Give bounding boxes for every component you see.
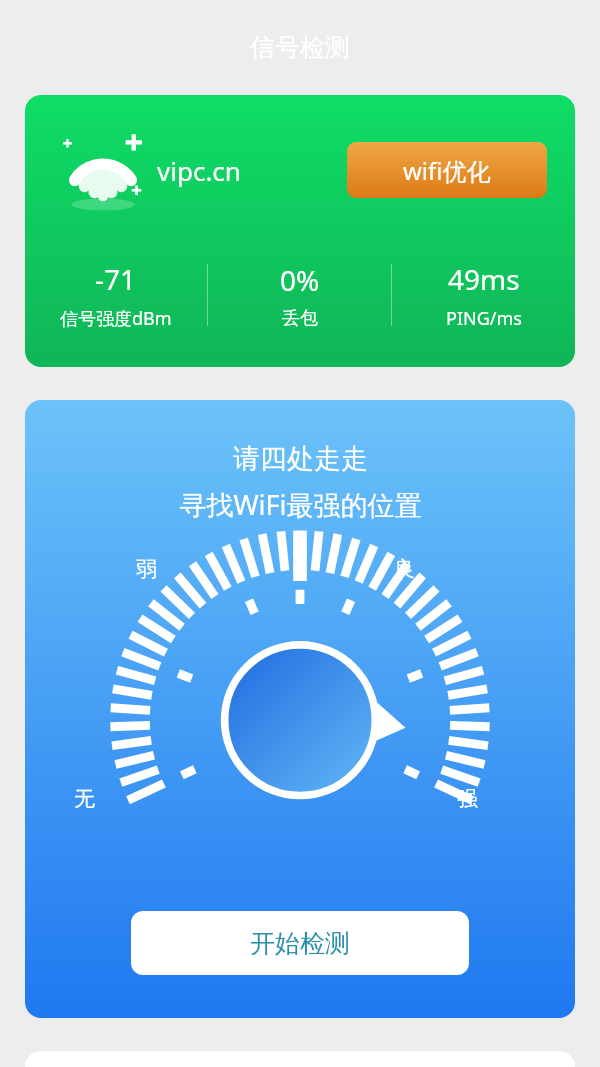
staticText: vipc.cn [157, 153, 241, 188]
staticText: 信号检测 [250, 32, 350, 63]
staticText: PING/ms [446, 306, 522, 331]
staticText: 信号强度dBm [60, 306, 172, 331]
staticText: 无 [74, 786, 95, 812]
staticText: 强 [457, 786, 478, 812]
staticText: 寻找WiFi最强的位置 [179, 486, 422, 523]
staticText: 开始检测 [250, 928, 350, 959]
staticText: -71 [95, 260, 137, 298]
staticText: 49ms [448, 260, 520, 298]
button[interactable]: 开始检测 [131, 911, 469, 975]
staticText: 请四处走走 [233, 442, 368, 476]
staticText: 0% [280, 261, 320, 299]
staticText: wifi优化 [403, 154, 491, 187]
button[interactable]: wifi优化 [347, 142, 547, 198]
staticText: 丢包 [282, 307, 318, 330]
staticText: 良 [394, 556, 415, 582]
staticText: 弱 [136, 556, 157, 582]
